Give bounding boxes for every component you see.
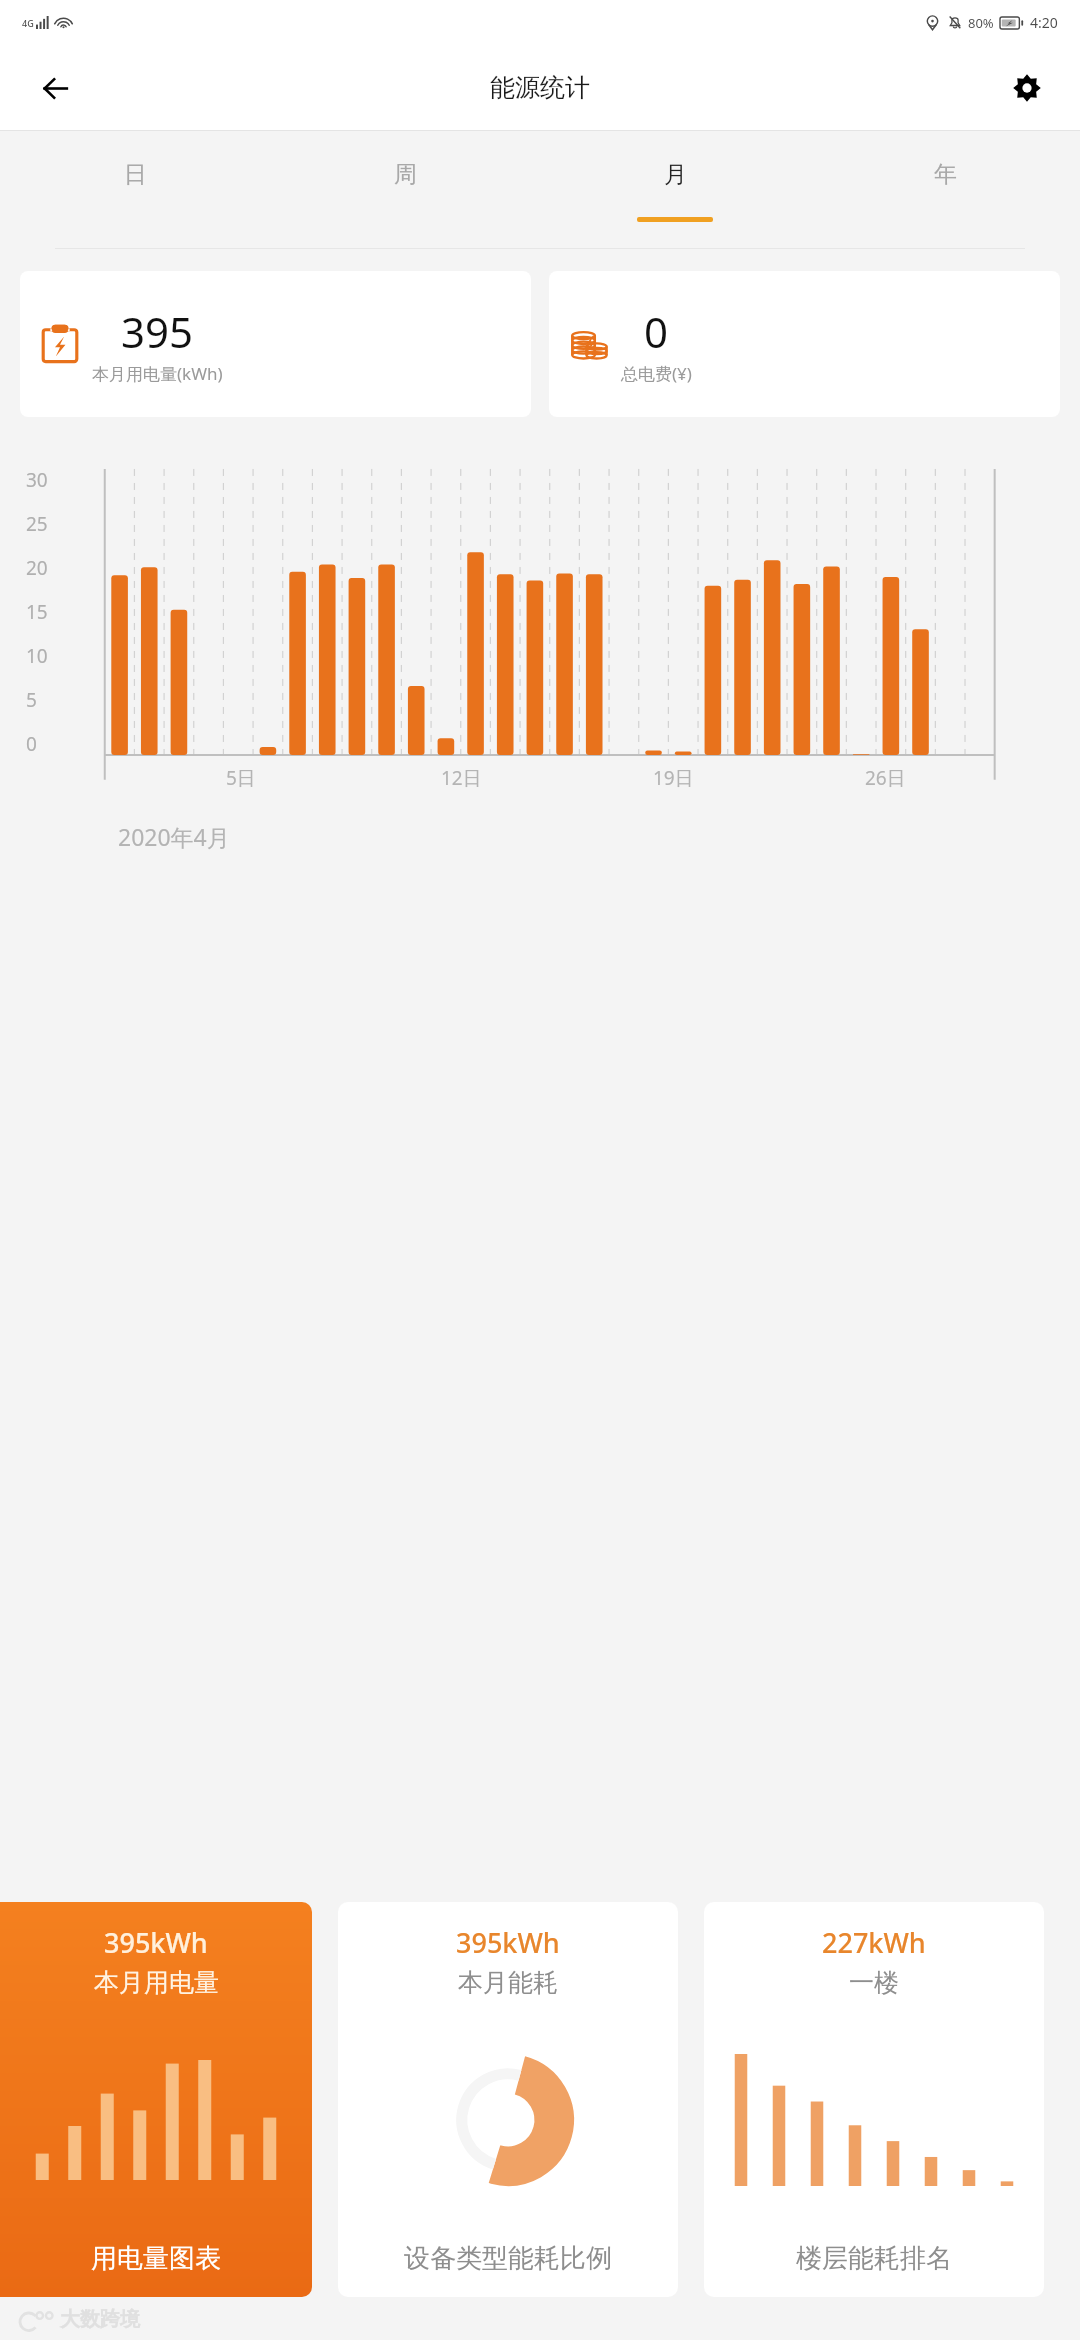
staticText: 20 — [26, 555, 48, 581]
staticText: 2020年4月 — [118, 821, 230, 852]
staticText: 10 — [26, 643, 48, 669]
staticText: 0 — [26, 731, 37, 757]
staticText: 25 — [26, 511, 48, 537]
staticText: 周 — [394, 160, 417, 189]
staticText: 0 — [644, 303, 669, 360]
staticText: 19日 — [653, 765, 694, 791]
staticText: 设备类型能耗比例 — [404, 2242, 612, 2275]
staticText: 月 — [664, 160, 687, 189]
staticText: 本月用电量 — [94, 1967, 219, 1998]
staticText: 80% — [968, 14, 994, 32]
button[interactable]: 227kWh — [704, 1902, 1044, 2297]
staticText: 5日 — [226, 765, 256, 791]
button[interactable]: 日 — [0, 131, 270, 251]
staticText: 大数跨境 — [60, 2307, 140, 2332]
staticText: 395 — [121, 303, 194, 360]
staticText: 4:20 — [1030, 13, 1058, 32]
button[interactable]: 月 — [540, 131, 810, 251]
staticText: 15 — [26, 599, 48, 625]
staticText: 26日 — [865, 765, 906, 791]
button[interactable]: 395kWh — [338, 1902, 678, 2297]
staticText: 227kWh — [822, 1924, 926, 1961]
button[interactable]: 395 — [20, 271, 531, 417]
staticText: 395kWh — [104, 1924, 208, 1961]
staticText: 12日 — [441, 765, 482, 791]
button[interactable]: Back — [30, 63, 80, 113]
staticText: 日 — [124, 160, 147, 189]
staticText: 年 — [934, 160, 957, 189]
button[interactable]: Settings — [1002, 63, 1052, 113]
staticText: 30 — [26, 467, 48, 493]
staticText: 本月用电量(kWh) — [92, 362, 223, 385]
staticText: 4G — [22, 17, 34, 29]
staticText: 能源统计 — [490, 72, 590, 103]
staticText: 一楼 — [849, 1967, 899, 1998]
button[interactable]: 395kWh — [0, 1902, 312, 2297]
staticText: 395kWh — [456, 1924, 560, 1961]
button[interactable]: 0 — [549, 271, 1060, 417]
staticText: 用电量图表 — [91, 2242, 221, 2275]
staticText: 总电费(¥) — [621, 362, 692, 385]
staticText: 5 — [26, 687, 37, 713]
staticText: 本月能耗 — [458, 1967, 558, 1998]
button[interactable]: 周 — [270, 131, 540, 251]
button[interactable]: 年 — [810, 131, 1080, 251]
staticText: 楼层能耗排名 — [796, 2242, 952, 2275]
